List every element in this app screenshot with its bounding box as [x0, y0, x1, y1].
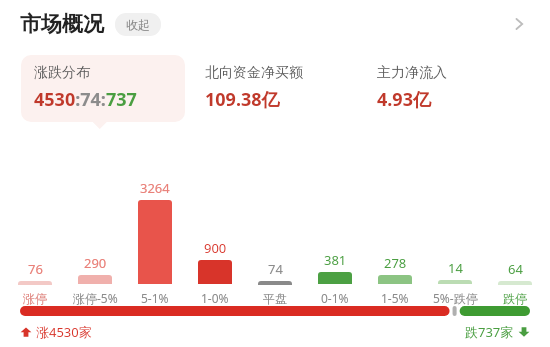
button[interactable]: 北向资金净买额 — [192, 55, 357, 122]
button[interactable]: 主力净流入 — [364, 55, 529, 122]
staticText: 5%-跌停 — [433, 290, 478, 306]
staticText: 290 — [84, 254, 107, 272]
staticText: 76 — [28, 260, 43, 278]
staticText: 278 — [384, 254, 407, 272]
button[interactable]: More — [504, 9, 534, 39]
staticText: 14 — [448, 259, 463, 277]
staticText: 涨4530家 — [36, 323, 92, 341]
staticText: 74 — [268, 260, 283, 278]
staticText: 4.93亿 — [377, 87, 431, 112]
staticText: 跌停 — [503, 291, 527, 306]
button[interactable]: 涨跌分布 — [21, 55, 185, 122]
staticText: 64 — [508, 260, 523, 278]
staticText: 5-1% — [141, 290, 169, 306]
staticText: 381 — [324, 251, 347, 269]
staticText: 0-1% — [321, 290, 349, 306]
staticText: 1-0% — [201, 290, 229, 306]
staticText: 平盘 — [263, 291, 287, 306]
staticText: 涨跌分布 — [34, 64, 90, 82]
staticText: 主力净流入 — [377, 64, 447, 82]
staticText: 市场概况 — [20, 11, 104, 37]
staticText: 北向资金净买额 — [205, 64, 303, 82]
staticText: 涨停-5% — [73, 290, 118, 306]
button[interactable]: 收起 — [115, 13, 161, 36]
staticText: 4530:74:737 — [34, 87, 137, 112]
staticText: 涨停 — [23, 291, 47, 306]
staticText: 1-5% — [381, 290, 409, 306]
staticText: 收起 — [126, 17, 150, 32]
staticText: 900 — [204, 239, 227, 257]
staticText: 3264 — [140, 179, 170, 197]
staticText: 跌737家 — [465, 323, 514, 341]
staticText: 109.38亿 — [205, 87, 280, 112]
